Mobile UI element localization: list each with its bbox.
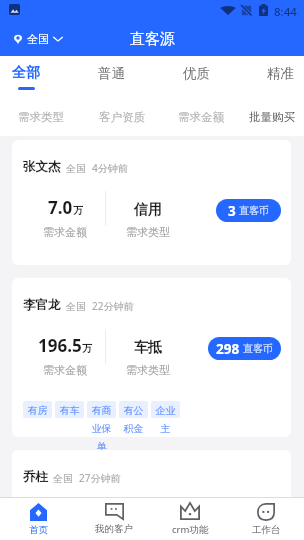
staticText: 批量购买 — [249, 110, 295, 124]
button[interactable]: Workbench — [228, 498, 304, 540]
staticText: 27分钟前 — [79, 471, 121, 485]
staticText: 有房 — [27, 404, 48, 417]
staticText: 我的客户 — [95, 523, 133, 535]
staticText: 需求类型 — [126, 363, 170, 377]
staticText: 全国 — [53, 472, 73, 485]
staticText: 首页 — [29, 524, 48, 536]
button[interactable]: My customers — [76, 498, 152, 540]
staticText: 有公积金 — [123, 404, 144, 435]
staticText: 有商业保单 — [91, 404, 112, 453]
staticText: 需求类型 — [126, 225, 170, 239]
button[interactable]: CRM — [152, 498, 228, 540]
staticText: 乔柱 — [23, 469, 48, 485]
button[interactable]: 需求类型 — [13, 102, 69, 132]
button[interactable]: 精准 — [260, 56, 300, 94]
staticText: 需求金额 — [43, 363, 87, 377]
button[interactable]: 李官龙 — [12, 278, 291, 437]
staticText: 直客源 — [130, 30, 175, 49]
staticText: 7.0 — [48, 196, 73, 219]
staticText: 8:44 — [274, 4, 297, 20]
staticText: 需求金额 — [178, 110, 224, 124]
staticText: 22分钟前 — [92, 299, 134, 313]
staticText: 298 — [216, 340, 240, 358]
staticText: 196.5 — [38, 334, 82, 357]
staticText: 客户资质 — [99, 110, 145, 124]
staticText: crm功能 — [172, 523, 209, 536]
button[interactable]: 需求金额 — [173, 102, 229, 132]
staticText: 全部 — [12, 64, 40, 82]
staticText: 优质 — [183, 65, 210, 82]
staticText: 直客币 — [243, 342, 273, 355]
button[interactable]: Home — [0, 498, 76, 540]
button[interactable]: 298 — [208, 337, 281, 360]
staticText: 普通 — [98, 65, 125, 82]
staticText: 工作台 — [252, 524, 281, 536]
staticText: 全国 — [66, 162, 86, 175]
staticText: 企业主 — [155, 404, 176, 435]
staticText: 有车 — [59, 404, 80, 417]
staticText: 全国 — [66, 300, 86, 313]
staticText: 万 — [73, 204, 83, 217]
staticText: 万 — [82, 342, 92, 355]
staticText: 精准 — [267, 65, 294, 82]
staticText: 张文杰 — [23, 159, 61, 175]
button[interactable]: 客户资质 — [94, 102, 150, 132]
button[interactable]: 张文杰 — [12, 140, 291, 265]
button[interactable]: 3 — [216, 199, 281, 222]
button[interactable]: 全部 — [6, 56, 46, 94]
staticText: 信用 — [134, 201, 162, 219]
staticText: 3 — [228, 202, 236, 220]
button[interactable]: 普通 — [91, 56, 131, 94]
staticText: 需求金额 — [43, 225, 87, 239]
staticText: 需求类型 — [18, 110, 64, 124]
button[interactable]: 优质 — [176, 56, 216, 94]
button[interactable]: 乔柱 — [12, 450, 291, 540]
staticText: 全国 — [27, 32, 49, 46]
staticText: 车抵 — [134, 339, 162, 357]
staticText: 4分钟前 — [92, 161, 128, 175]
staticText: 李官龙 — [23, 297, 61, 313]
button[interactable]: 全国 — [14, 32, 63, 46]
staticText: 直客币 — [239, 204, 269, 217]
button[interactable]: 批量购买 — [244, 102, 300, 132]
